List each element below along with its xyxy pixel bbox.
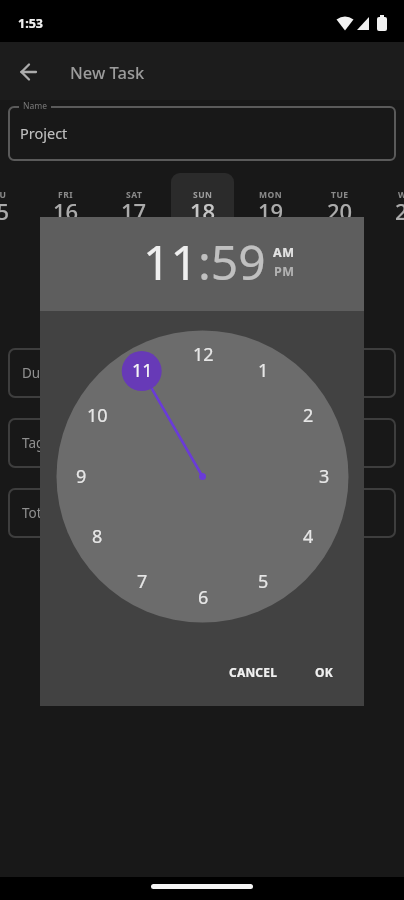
button[interactable]: PM (214, 249, 354, 293)
staticText: 2 (303, 403, 314, 428)
button[interactable]: CANCEL (183, 650, 323, 694)
staticText: Project (20, 123, 68, 143)
button[interactable]: 11 (72, 348, 212, 392)
staticText: 12 (193, 342, 214, 367)
button[interactable]: 15 (0, 189, 67, 233)
staticText: Tags (22, 434, 51, 452)
staticText: 1:53 (18, 15, 43, 32)
staticText: 7 (137, 569, 148, 594)
staticText: PM (274, 263, 295, 280)
staticText: 11 (132, 358, 153, 383)
staticText: TUE (331, 189, 349, 201)
staticText: 21 (395, 196, 404, 226)
button[interactable] (8, 418, 396, 468)
staticText: THU (0, 189, 7, 201)
button[interactable]: 16 (0, 189, 136, 233)
staticText: CANCEL (229, 664, 278, 680)
staticText: New Task (70, 61, 145, 83)
staticText: AM (273, 244, 295, 261)
button[interactable]: 9 (11, 454, 151, 498)
button[interactable]: 12 (133, 332, 273, 376)
button[interactable] (12, 57, 42, 87)
staticText: 8 (92, 524, 103, 549)
button[interactable]: 7 (72, 559, 212, 603)
staticText: SAT (126, 189, 143, 201)
button[interactable]: 3 (254, 454, 394, 498)
staticText: 5 (258, 569, 269, 594)
button[interactable]: 6 (133, 575, 273, 619)
button[interactable]: 18 (133, 189, 273, 233)
button[interactable] (8, 348, 396, 398)
staticText: 19 (258, 196, 284, 226)
staticText: 11:59 (143, 229, 266, 289)
button[interactable]: 5 (193, 559, 333, 603)
staticText: 1 (258, 358, 269, 383)
staticText: WED (398, 189, 404, 201)
staticText: 3 (319, 464, 330, 489)
button[interactable]: AM (214, 230, 354, 274)
button[interactable]: 1 (193, 348, 333, 392)
staticText: Due Date (22, 364, 82, 382)
button[interactable]: 20 (270, 189, 404, 233)
button[interactable]: 10 (27, 393, 167, 437)
staticText: MON (259, 189, 283, 201)
button[interactable] (171, 173, 234, 221)
button[interactable]: OK (254, 650, 394, 694)
staticText: Total time (22, 504, 85, 522)
button[interactable]: 8 (27, 514, 167, 558)
staticText: 4 (303, 524, 314, 549)
button[interactable] (8, 488, 396, 538)
button[interactable]: 17 (64, 189, 204, 233)
staticText: 15 (0, 196, 10, 226)
button[interactable]: 21 (338, 189, 404, 233)
staticText: FRI (58, 189, 74, 201)
staticText: 16 (53, 196, 79, 226)
staticText: 17 (121, 196, 147, 226)
button[interactable]: 2 (238, 393, 378, 437)
staticText: 6 (198, 585, 209, 610)
button[interactable] (8, 106, 396, 161)
staticText: 18 (190, 196, 216, 226)
staticText: 20 (327, 196, 353, 226)
staticText: 10 (87, 403, 108, 428)
button[interactable]: 19 (201, 189, 341, 233)
staticText: 9 (76, 464, 87, 489)
staticText: SUN (193, 189, 213, 201)
staticText: Name (23, 100, 47, 112)
staticText: OK (315, 664, 333, 680)
button[interactable]: 4 (238, 514, 378, 558)
